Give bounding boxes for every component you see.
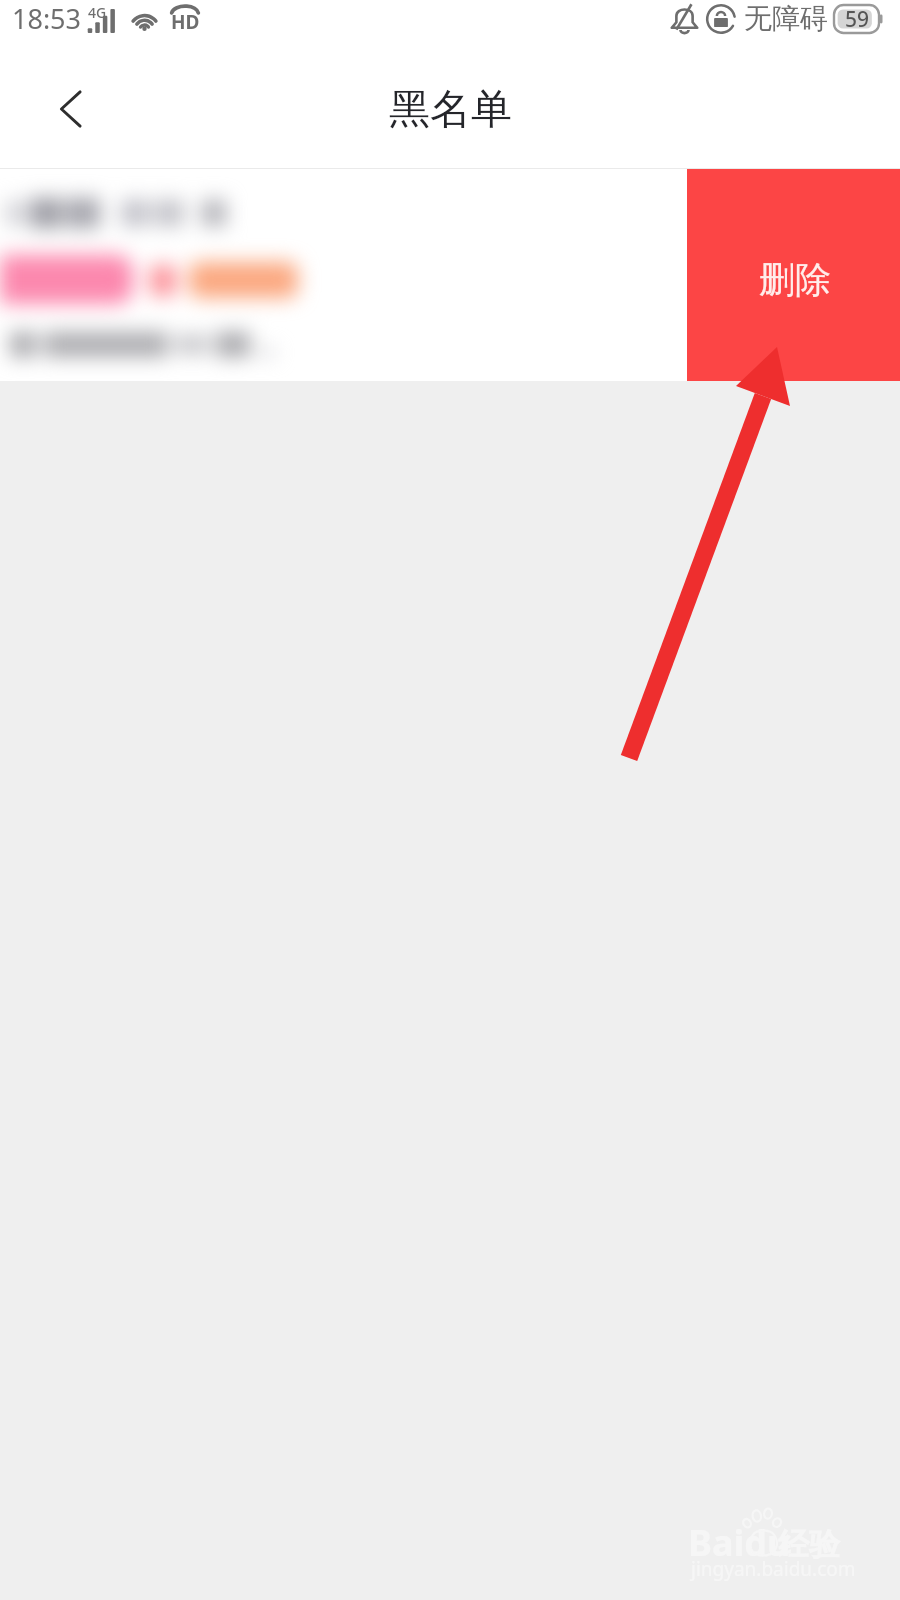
other: Silent mode — [670, 3, 699, 34]
staticText: 4G — [88, 3, 107, 22]
staticText: 59 — [845, 5, 870, 33]
button[interactable]: 黑名单条目 — [0, 169, 900, 381]
staticText: 删除 — [759, 257, 831, 302]
other: HD calling — [171, 5, 199, 33]
staticText: 无障碍 — [744, 1, 828, 36]
button[interactable]: Back — [40, 82, 102, 144]
button[interactable]: 删除 — [687, 169, 900, 381]
staticText: 黑名单 — [389, 84, 512, 136]
staticText: 经验 — [778, 1525, 840, 1564]
staticText: Baidu — [688, 1518, 791, 1567]
staticText: 18:53 — [12, 0, 82, 37]
other: Screen lock — [706, 4, 736, 34]
staticText: HD — [171, 9, 199, 35]
